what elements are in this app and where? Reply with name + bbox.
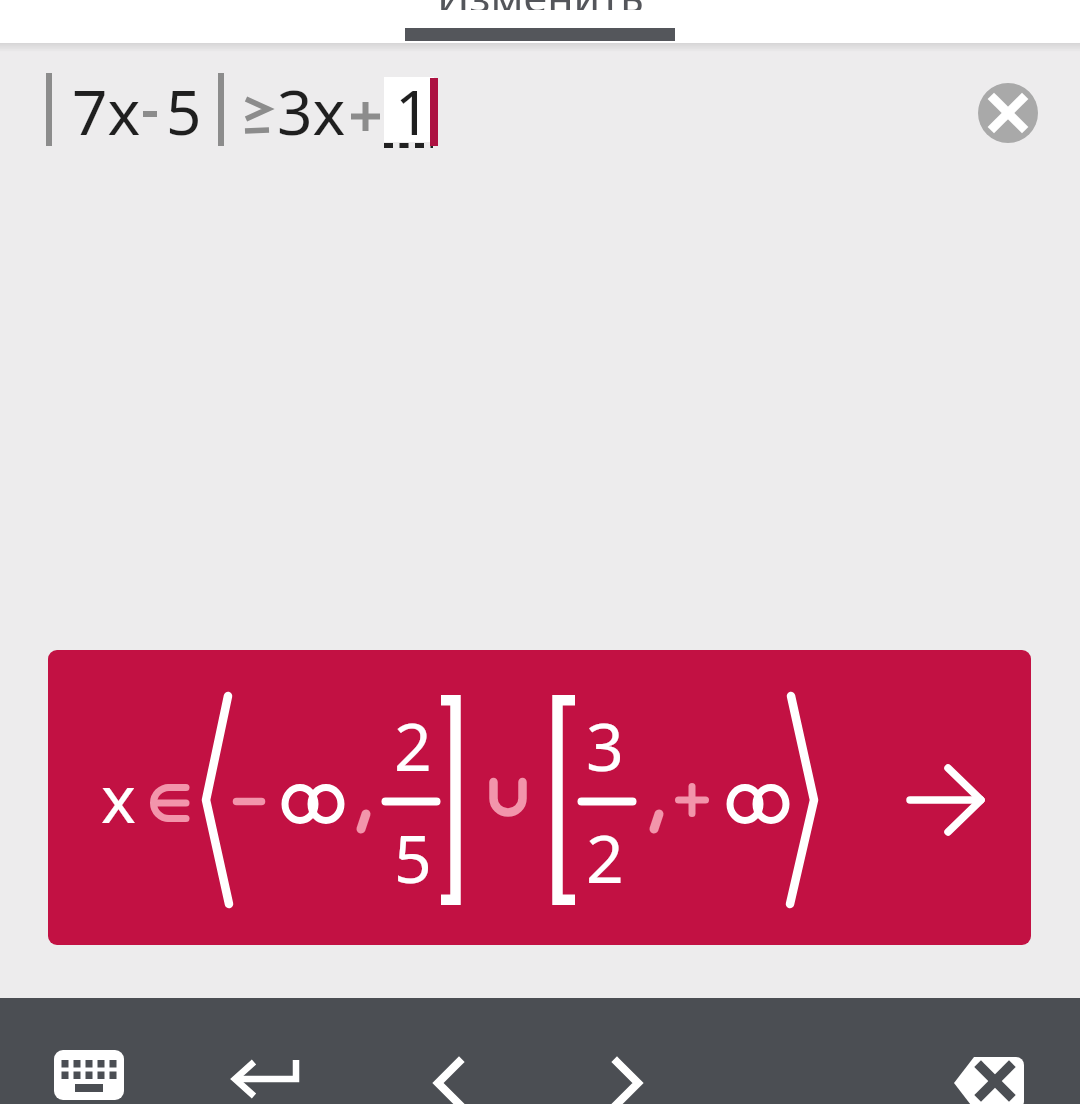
staticText: x — [101, 752, 136, 842]
staticText: 3x — [277, 69, 346, 153]
staticText: Изменить — [437, 0, 644, 10]
button[interactable] — [612, 1059, 642, 1104]
staticText: 2 — [586, 812, 624, 902]
staticText: 3 — [586, 700, 624, 790]
staticText: 5 — [394, 812, 432, 902]
button[interactable] — [230, 1058, 302, 1102]
button[interactable] — [978, 83, 1038, 143]
button[interactable] — [54, 1050, 124, 1100]
button[interactable] — [434, 1059, 464, 1104]
staticText: 1 — [395, 69, 431, 153]
staticText: 7x — [72, 69, 141, 153]
staticText: 5 — [166, 69, 202, 153]
button[interactable] — [954, 1057, 1024, 1104]
button[interactable] — [900, 758, 995, 843]
staticText: 2 — [394, 700, 432, 790]
button[interactable]: x — [48, 650, 1031, 945]
